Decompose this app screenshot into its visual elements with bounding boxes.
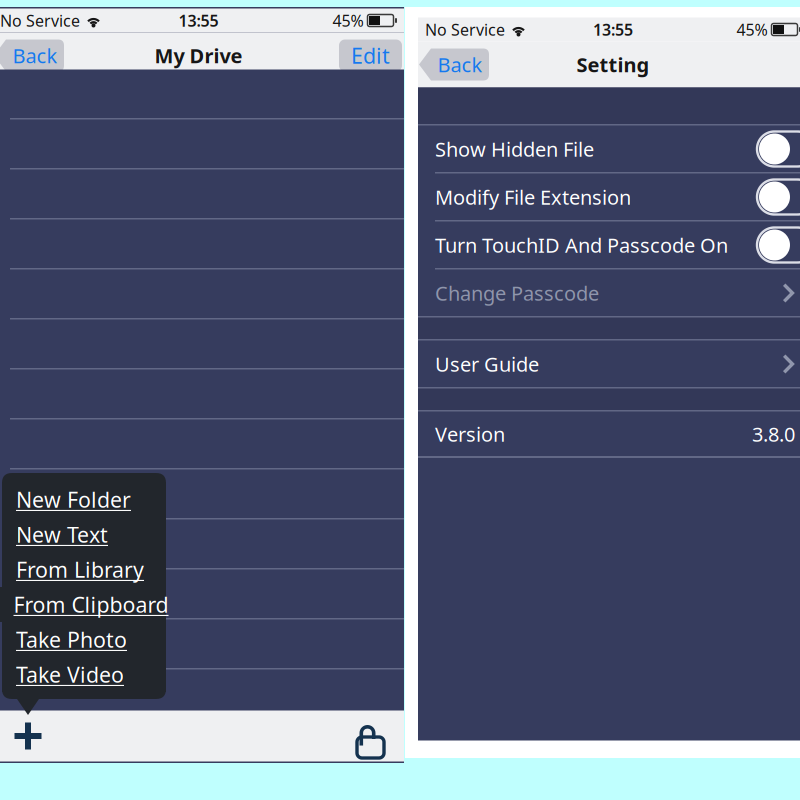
- button[interactable]: Modify File Extension: [418, 173, 800, 220]
- staticText: 45%: [736, 19, 767, 40]
- staticText: 13:55: [178, 10, 218, 31]
- staticText: Modify File Extension: [435, 184, 631, 210]
- staticText: From Clipboard: [13, 590, 168, 619]
- staticText: No Service: [0, 10, 80, 31]
- staticText: 13:55: [593, 19, 633, 40]
- button[interactable]: Back: [419, 48, 489, 80]
- staticText: Back: [437, 51, 482, 78]
- staticText: Take Photo: [16, 625, 127, 654]
- button[interactable]: Take Photo: [2, 622, 166, 657]
- button[interactable]: New item: [13, 721, 43, 751]
- staticText: Take Video: [16, 660, 124, 689]
- staticText: Back: [12, 42, 57, 69]
- staticText: Edit: [351, 41, 390, 70]
- button[interactable]: Take Video: [2, 657, 166, 692]
- button[interactable]: User Guide: [418, 340, 800, 387]
- button[interactable]: New Folder: [2, 482, 166, 517]
- staticText: Change Passcode: [435, 280, 599, 306]
- button[interactable]: Edit: [339, 39, 402, 71]
- button[interactable]: Unlock: [357, 718, 384, 753]
- staticText: My Drive: [154, 42, 242, 69]
- staticText: Setting: [576, 51, 649, 78]
- staticText: 3.8.0: [752, 421, 795, 447]
- button[interactable]: Change Passcode: [418, 269, 800, 316]
- staticText: 45%: [332, 10, 363, 31]
- staticText: Show Hidden File: [435, 136, 594, 162]
- button[interactable]: Turn TouchID And Passcode On: [418, 221, 800, 268]
- staticText: User Guide: [435, 351, 539, 377]
- button[interactable]: New Text: [2, 517, 166, 552]
- staticText: Turn TouchID And Passcode On: [435, 232, 728, 258]
- staticText: From Library: [16, 555, 144, 584]
- staticText: No Service: [425, 19, 505, 40]
- staticText: Version: [435, 421, 505, 447]
- staticText: New Text: [16, 520, 108, 549]
- button[interactable]: From Clipboard: [2, 587, 166, 622]
- button[interactable]: Show Hidden File: [418, 125, 800, 172]
- staticText: New Folder: [16, 485, 131, 514]
- button[interactable]: From Library: [2, 552, 166, 587]
- button[interactable]: Back: [0, 39, 64, 71]
- button[interactable]: Version: [418, 411, 800, 456]
